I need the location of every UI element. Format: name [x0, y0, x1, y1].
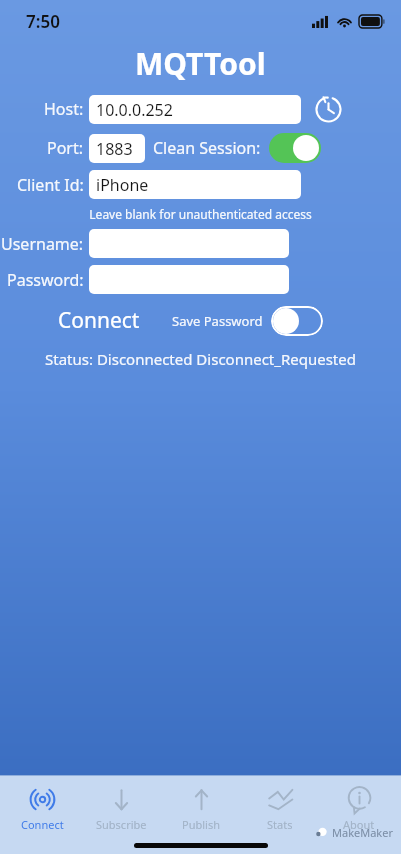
staticText: 10.0.0.252	[96, 99, 173, 121]
staticText: Username:	[1, 233, 84, 255]
button[interactable]: Publish	[164, 784, 238, 834]
button[interactable]: Clean Session toggle	[269, 133, 321, 163]
button[interactable]: Connect	[52, 302, 146, 339]
staticText: Clean Session:	[153, 137, 261, 159]
staticText: MakeMaker	[332, 825, 393, 840]
button[interactable]: Host history	[311, 92, 345, 126]
button[interactable]: Save Password toggle	[271, 306, 323, 336]
staticText: Host:	[44, 98, 84, 120]
staticText: 1883	[96, 138, 133, 160]
button[interactable]: 1883	[89, 134, 145, 163]
staticText: Password:	[7, 269, 84, 291]
staticText: Port:	[47, 137, 84, 159]
staticText: Status: Disconnected Disconnect_Requeste…	[0, 349, 401, 369]
staticText: Connect	[58, 306, 140, 335]
staticText: 7:50	[26, 10, 60, 33]
staticText: Connect	[21, 817, 64, 832]
button[interactable]: About	[322, 784, 396, 834]
staticText: Client Id:	[17, 174, 84, 196]
staticText: Subscribe	[96, 817, 147, 832]
staticText: Leave blank for unauthenticated access	[0, 206, 401, 222]
button[interactable]: Stats	[243, 784, 317, 834]
staticText: Save Password	[172, 312, 263, 330]
staticText: Publish	[182, 817, 220, 832]
button[interactable]: 10.0.0.252	[89, 95, 301, 124]
button[interactable]	[89, 229, 289, 258]
staticText: MQTTool	[135, 43, 266, 84]
button[interactable]	[89, 265, 289, 294]
staticText: Stats	[267, 817, 293, 832]
staticText: About	[343, 817, 375, 832]
button[interactable]: Subscribe	[84, 784, 158, 834]
staticText: iPhone	[96, 174, 149, 196]
button[interactable]: Connect	[5, 784, 79, 834]
button[interactable]: iPhone	[89, 170, 301, 199]
